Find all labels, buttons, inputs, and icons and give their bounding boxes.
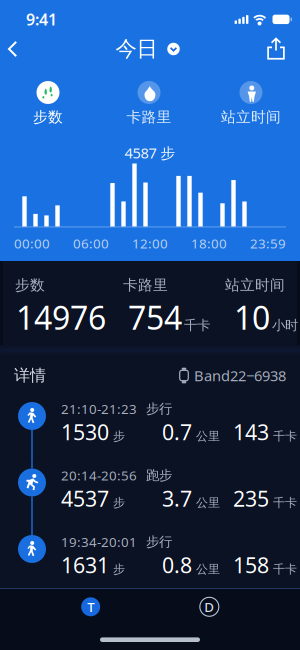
staticText: 1530 <box>61 418 109 446</box>
staticText: 4587 步 <box>124 143 175 162</box>
staticText: D <box>204 598 214 616</box>
staticText: 0.7 <box>162 418 192 446</box>
staticText: 143 <box>233 418 269 446</box>
button[interactable]: 分享 <box>258 31 294 67</box>
staticText: 23:59 <box>250 234 286 252</box>
staticText: 3.7 <box>162 484 192 512</box>
button[interactable]: 选择日期 <box>162 38 184 60</box>
staticText: 19:34-20:01 <box>61 533 137 551</box>
staticText: 06:00 <box>73 234 109 252</box>
staticText: 详情 <box>14 366 46 385</box>
staticText: 21:10-21:23 <box>61 400 137 418</box>
staticText: 千卡 <box>273 562 297 576</box>
button[interactable]: 返回 <box>8 31 44 67</box>
button[interactable]: 卡路里 <box>96 81 202 126</box>
staticText: 步 <box>113 562 125 576</box>
staticText: 站立时间 <box>221 108 281 126</box>
staticText: 0.8 <box>162 551 192 579</box>
staticText: 千卡 <box>273 495 297 510</box>
staticText: 千卡 <box>273 429 297 443</box>
staticText: 754 <box>128 296 182 338</box>
staticText: 小时 <box>272 317 298 333</box>
button[interactable]: T <box>63 590 119 624</box>
staticText: 步 <box>113 429 125 443</box>
staticText: 跑步 <box>146 467 172 484</box>
staticText: 步数 <box>15 276 45 294</box>
staticText: 今日 <box>115 36 157 62</box>
staticText: 14976 <box>16 296 106 338</box>
staticText: 1631 <box>61 551 109 579</box>
staticText: 公里 <box>196 495 220 510</box>
button[interactable]: D <box>181 590 237 624</box>
staticText: 9:41 <box>26 9 57 30</box>
staticText: 20:14-20:56 <box>61 466 137 484</box>
staticText: 步数 <box>33 108 63 126</box>
staticText: 步行 <box>146 401 172 417</box>
button[interactable]: 站立时间 <box>202 81 300 126</box>
button[interactable]: 19:34-20:01 <box>0 529 300 595</box>
staticText: 4537 <box>61 484 109 512</box>
staticText: 卡路里 <box>126 108 171 126</box>
staticText: Band22−6938 <box>194 366 286 385</box>
staticText: 00:00 <box>14 234 50 252</box>
staticText: 12:00 <box>132 234 168 252</box>
button[interactable]: 21:10-21:23 <box>0 396 300 462</box>
staticText: T <box>87 598 94 616</box>
button[interactable]: 20:14-20:56 <box>0 462 300 529</box>
staticText: 158 <box>233 551 269 579</box>
staticText: 10 <box>234 296 270 338</box>
button[interactable]: 步数 <box>0 81 96 126</box>
staticText: 18:00 <box>191 234 227 252</box>
staticText: 235 <box>233 484 269 512</box>
staticText: 卡路里 <box>123 276 168 294</box>
staticText: 公里 <box>196 562 220 576</box>
staticText: 公里 <box>196 429 220 443</box>
staticText: 千卡 <box>184 317 210 333</box>
staticText: 站立时间 <box>225 276 285 294</box>
staticText: 步 <box>113 495 125 510</box>
staticText: 步行 <box>146 534 172 550</box>
